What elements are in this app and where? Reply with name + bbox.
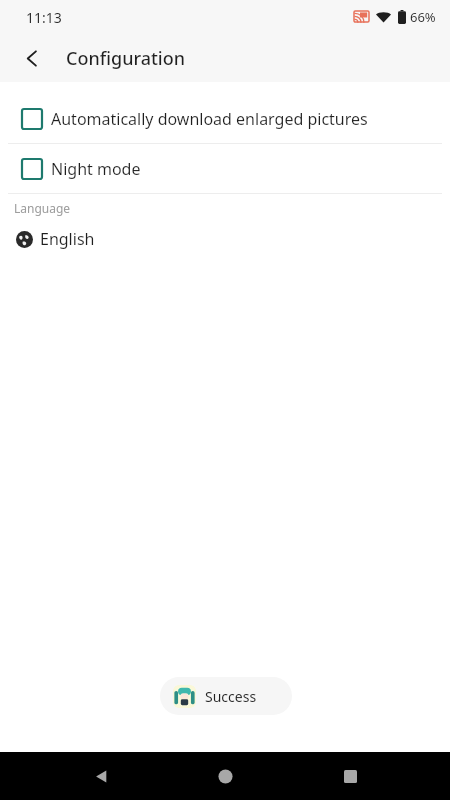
button[interactable]: Recent apps [326, 752, 374, 800]
button[interactable]: Back [77, 752, 125, 800]
staticText: Automatically download enlarged pictures [51, 108, 368, 130]
button[interactable]: Night mode [0, 144, 450, 193]
button[interactable]: Back [12, 38, 52, 78]
button[interactable]: Home [201, 752, 249, 800]
staticText: Success [205, 687, 257, 706]
staticText: Language [14, 200, 71, 216]
staticText: Configuration [66, 46, 186, 71]
button[interactable]: English [0, 221, 450, 257]
staticText: Night mode [51, 158, 141, 180]
staticText: English [40, 228, 95, 250]
button[interactable]: Automatically download enlarged pictures [0, 94, 450, 143]
staticText: 11:13 [26, 8, 62, 27]
staticText: 66% [410, 8, 436, 26]
button[interactable]: Success [160, 677, 292, 715]
